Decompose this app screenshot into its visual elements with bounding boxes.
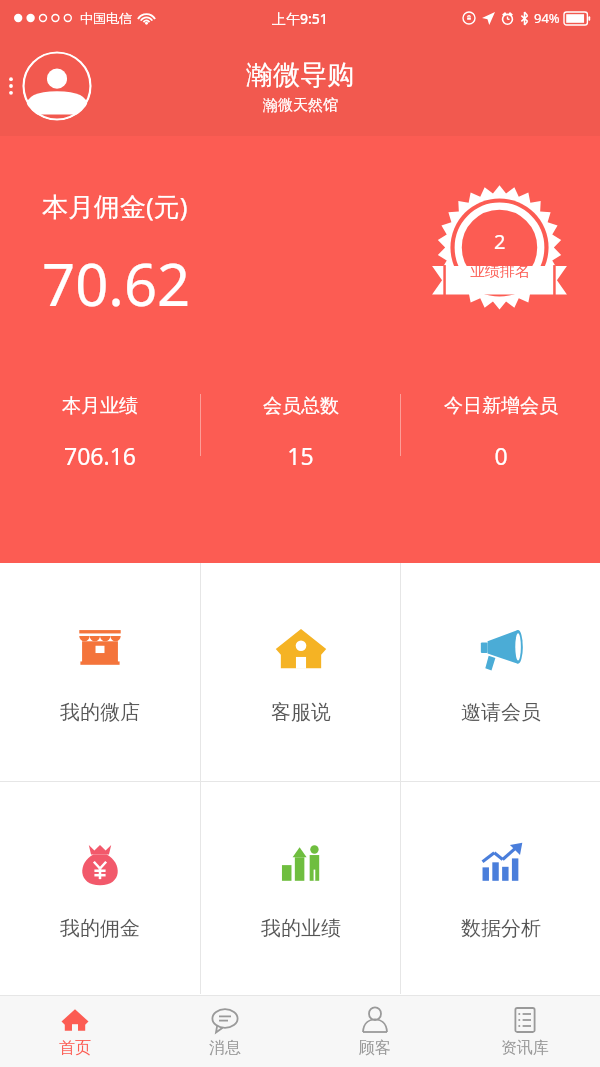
button[interactable]: 资讯库 [450,996,600,1067]
staticText: 顾客 [359,1038,391,1058]
button[interactable]: 数据分析 [401,782,600,994]
button[interactable]: 业绩排名 [427,184,572,319]
staticText: 邀请会员 [461,700,541,725]
staticText: 上午9:51 [272,9,328,28]
staticText: 客服说 [271,700,331,725]
staticText: 本月佣金(元) [42,188,188,224]
staticText: 706.16 [64,440,136,471]
staticText: 业绩排名 [470,262,530,281]
staticText: 0 [494,440,508,471]
button[interactable]: 首页 [0,996,150,1067]
staticText: 70.62 [42,244,191,323]
staticText: 会员总数 [263,394,339,418]
button[interactable]: 会员总数 [201,394,400,504]
staticText: 我的业绩 [261,916,341,941]
staticText: 15 [287,440,314,471]
staticText: 2 [494,228,506,255]
staticText: 资讯库 [501,1038,549,1058]
button[interactable]: 邀请会员 [401,563,600,781]
button[interactable]: 今日新增会员 [401,394,600,504]
button[interactable]: 消息 [150,996,300,1067]
button[interactable]: 本月业绩 [0,394,200,504]
button[interactable]: More options [6,69,16,103]
staticText: 中国电信 [80,10,132,26]
staticText: 瀚微天然馆 [263,96,338,115]
button[interactable]: 我的微店 [0,563,200,781]
staticText: 数据分析 [461,916,541,941]
staticText: 消息 [209,1038,241,1058]
button[interactable]: 我的佣金 [0,782,200,994]
staticText: 我的佣金 [60,916,140,941]
staticText: 94% [534,9,560,27]
staticText: 首页 [59,1038,91,1058]
staticText: 瀚微导购 [246,58,354,92]
button[interactable]: 我的业绩 [201,782,400,994]
staticText: 我的微店 [60,700,140,725]
button[interactable]: 客服说 [201,563,400,781]
staticText: 本月业绩 [62,394,138,418]
button[interactable]: Profile [22,51,92,121]
staticText: 今日新增会员 [444,394,558,418]
button[interactable]: 顾客 [300,996,450,1067]
